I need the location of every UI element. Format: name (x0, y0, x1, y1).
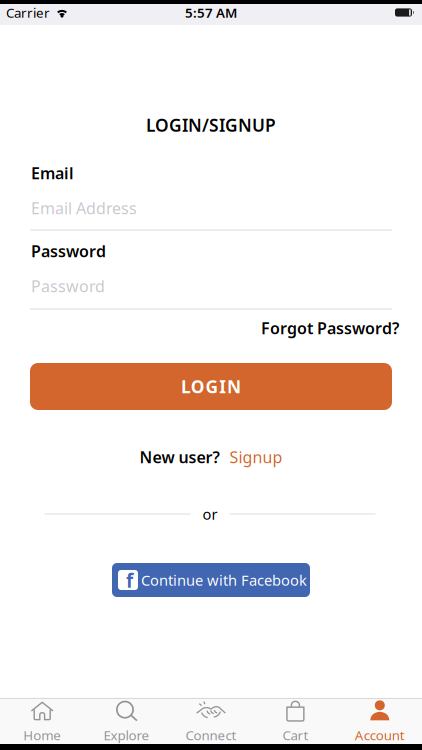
staticText: f (126, 568, 133, 593)
button[interactable]: Home (0, 698, 84, 744)
staticText: Forgot Password? (261, 317, 399, 339)
staticText: or (202, 504, 217, 524)
button[interactable]: Cart (253, 698, 338, 744)
button[interactable]: Account (338, 698, 422, 744)
button[interactable]: Signup (229, 446, 282, 468)
button[interactable]: LOGIN (30, 363, 392, 410)
staticText: Carrier (6, 4, 50, 21)
button[interactable]: Explore (84, 698, 169, 744)
staticText: Password (31, 240, 106, 262)
staticText: Email (31, 162, 74, 184)
staticText: Account (355, 726, 405, 744)
staticText: Signup (229, 446, 282, 468)
staticText: Home (23, 726, 61, 744)
button[interactable]: Forgot Password? (261, 317, 399, 339)
staticText: 5:57 AM (185, 4, 237, 21)
button[interactable]: f (112, 563, 310, 597)
staticText: Continue with Facebook (141, 570, 307, 590)
staticText: Password (31, 275, 105, 297)
staticText: LOGIN/SIGNUP (146, 113, 276, 136)
staticText: New user? (139, 446, 219, 468)
staticText: LOGIN (181, 375, 241, 398)
button[interactable]: Connect (169, 698, 253, 744)
staticText: Email Address (31, 197, 137, 219)
staticText: Explore (104, 726, 150, 744)
staticText: Connect (185, 726, 236, 744)
staticText: Cart (282, 726, 308, 744)
